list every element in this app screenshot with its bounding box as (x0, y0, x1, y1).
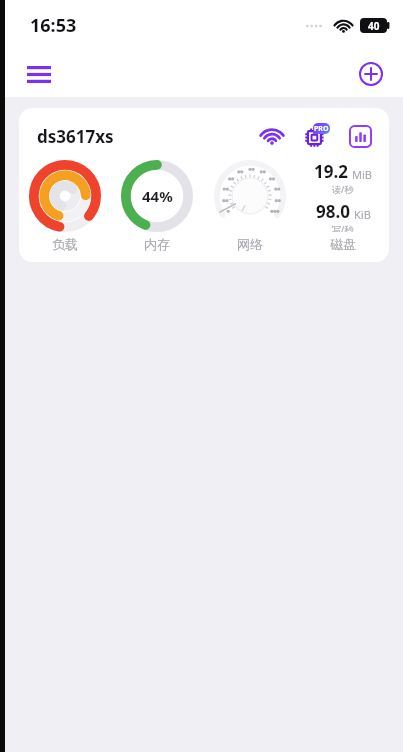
button[interactable]: Menu (17, 52, 61, 96)
staticText: 读/秒 (332, 183, 354, 195)
button[interactable]: Connection (257, 121, 287, 151)
button[interactable]: ds3617xs (19, 108, 389, 262)
staticText: 98.0 (316, 200, 350, 223)
staticText: 写/秒 (332, 223, 354, 232)
staticText: KiB (354, 207, 371, 222)
button[interactable]: 负载 (19, 160, 111, 252)
button[interactable]: 网络 (203, 160, 296, 252)
staticText: PRO (314, 124, 329, 134)
staticText: 40 (368, 19, 380, 33)
button[interactable]: Pro CPU info (302, 121, 332, 151)
staticText: 16:53 (30, 13, 77, 38)
staticText: 磁盘 (330, 236, 356, 252)
staticText: 19.2 (314, 160, 348, 183)
staticText: 44% (142, 186, 173, 206)
button[interactable]: Add server (349, 52, 393, 96)
staticText: 负载 (52, 236, 78, 252)
button[interactable]: 44% (111, 160, 203, 252)
button[interactable]: 19.2 (296, 160, 389, 252)
staticText: MiB (352, 167, 372, 182)
staticText: ds3617xs (37, 125, 114, 148)
staticText: 网络 (237, 236, 263, 252)
button[interactable]: Statistics (345, 121, 375, 151)
staticText: 内存 (144, 236, 170, 252)
